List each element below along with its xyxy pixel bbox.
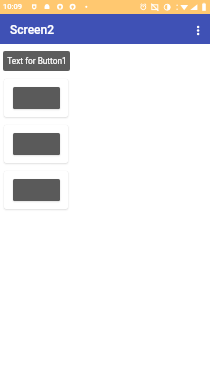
button[interactable]: Button3 bbox=[13, 179, 60, 201]
staticText: Screen2 bbox=[10, 23, 55, 37]
button[interactable]: Button1 bbox=[13, 87, 60, 109]
button[interactable]: More options bbox=[182, 15, 210, 43]
staticText: Text for Button1 bbox=[7, 56, 67, 66]
staticText: 10:09 bbox=[3, 2, 23, 11]
button[interactable]: Button2 bbox=[13, 133, 60, 155]
